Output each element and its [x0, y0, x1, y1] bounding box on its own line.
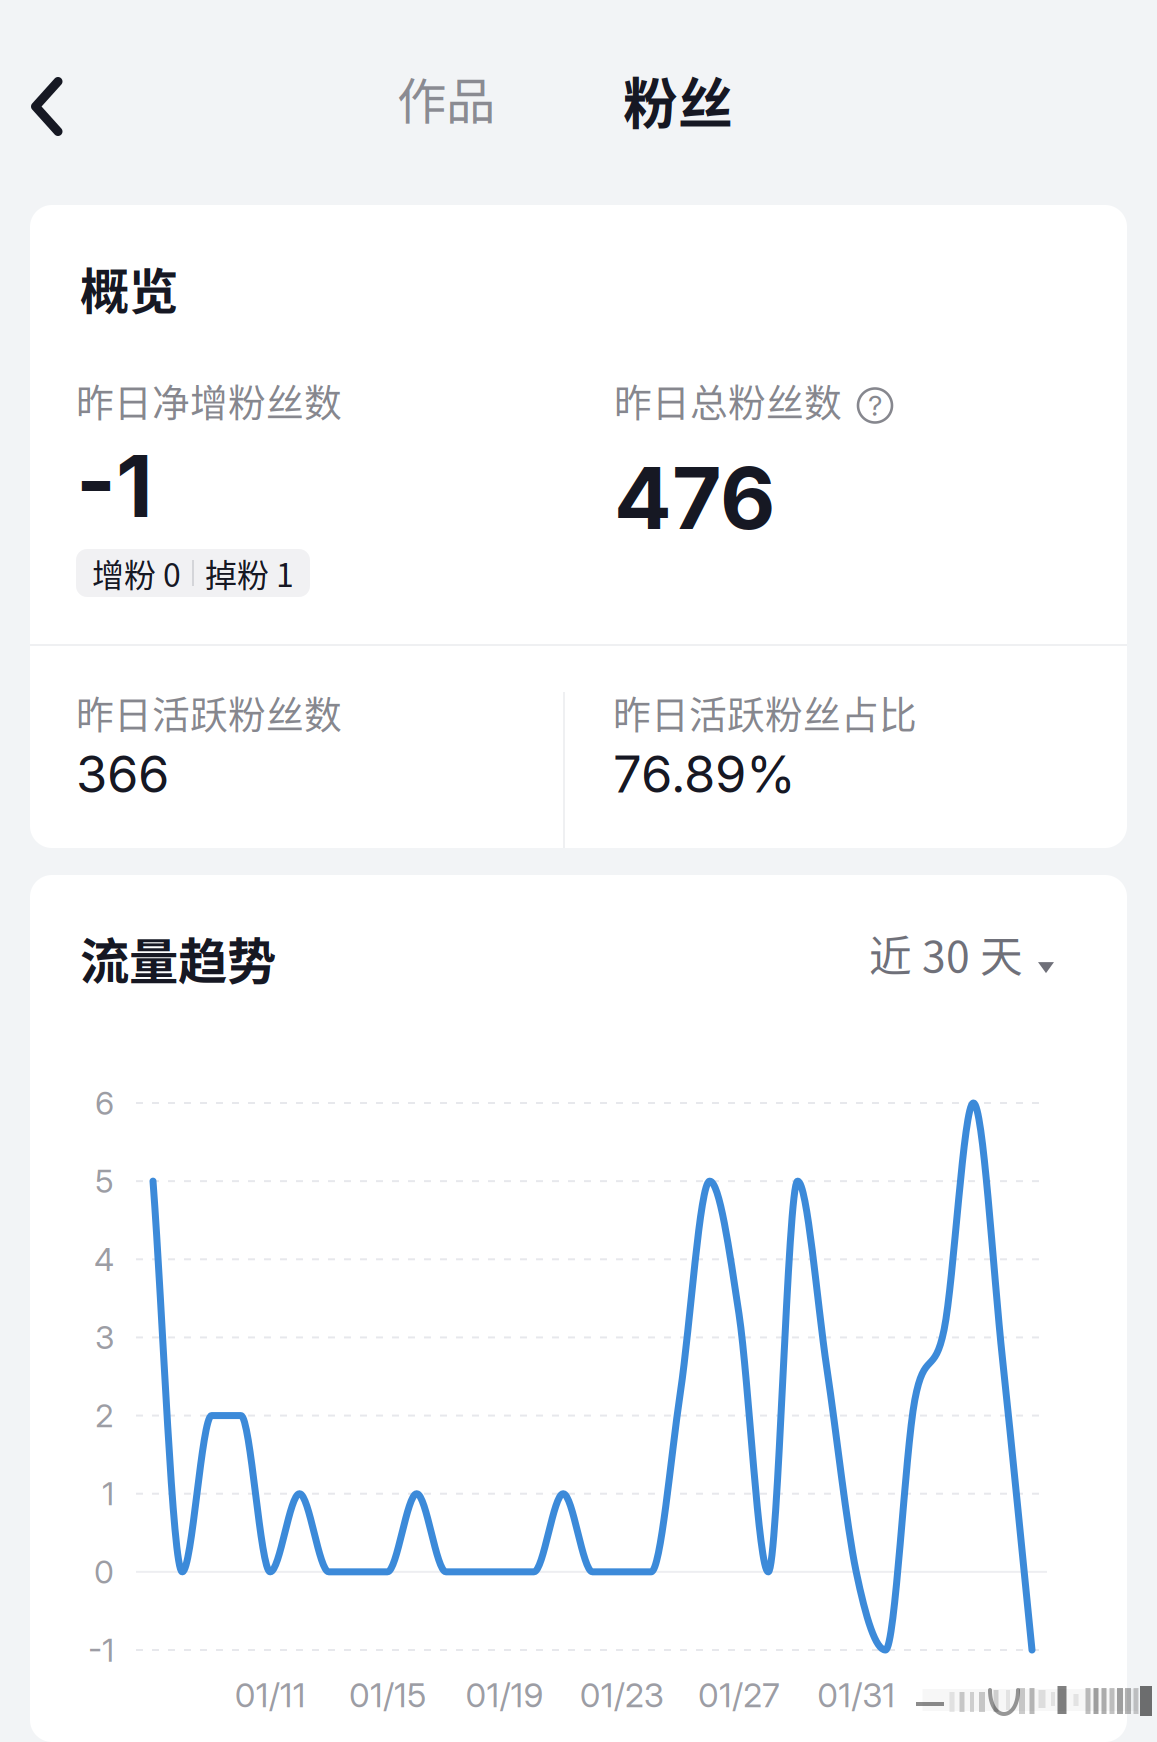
- staticText: -1: [76, 434, 153, 538]
- staticText: 昨日总粉丝数: [614, 373, 842, 427]
- staticText: 6: [95, 1084, 114, 1122]
- button[interactable]: 近 30 天: [869, 930, 1054, 986]
- staticText: 366: [76, 743, 169, 805]
- staticText: 昨日净增粉丝数: [76, 373, 342, 427]
- staticText: 近 30 天: [869, 923, 1023, 984]
- button[interactable]: 粉丝: [622, 0, 734, 205]
- staticText: 76.89%: [613, 743, 796, 805]
- staticText: 概览: [80, 252, 178, 324]
- staticText: 昨日活跃粉丝占比: [613, 685, 917, 739]
- staticText: 流量趋势: [80, 922, 276, 993]
- staticText: 01/27: [698, 1675, 780, 1715]
- button[interactable]: Back: [0, 0, 94, 205]
- staticText: ?: [868, 389, 882, 422]
- staticText: -1: [88, 1631, 114, 1669]
- staticText: 增粉 0: [92, 550, 181, 596]
- staticText: 作品: [397, 62, 495, 133]
- staticText: 1: [102, 1474, 114, 1513]
- staticText: 3: [95, 1318, 114, 1357]
- staticText: 01/23: [580, 1675, 664, 1715]
- staticText: 昨日活跃粉丝数: [76, 685, 342, 739]
- staticText: 01/11: [235, 1675, 306, 1715]
- staticText: 0: [94, 1552, 114, 1591]
- staticText: 01/31: [817, 1675, 895, 1715]
- button[interactable]: 作品: [396, 0, 496, 205]
- staticText: 01/19: [466, 1675, 544, 1715]
- staticText: 476: [614, 446, 775, 550]
- staticText: 2: [95, 1396, 114, 1435]
- staticText: 4: [94, 1240, 114, 1279]
- staticText: 粉丝: [623, 60, 733, 139]
- staticText: 掉粉 1: [205, 550, 294, 596]
- staticText: 01/15: [349, 1675, 426, 1715]
- staticText: 5: [95, 1162, 114, 1200]
